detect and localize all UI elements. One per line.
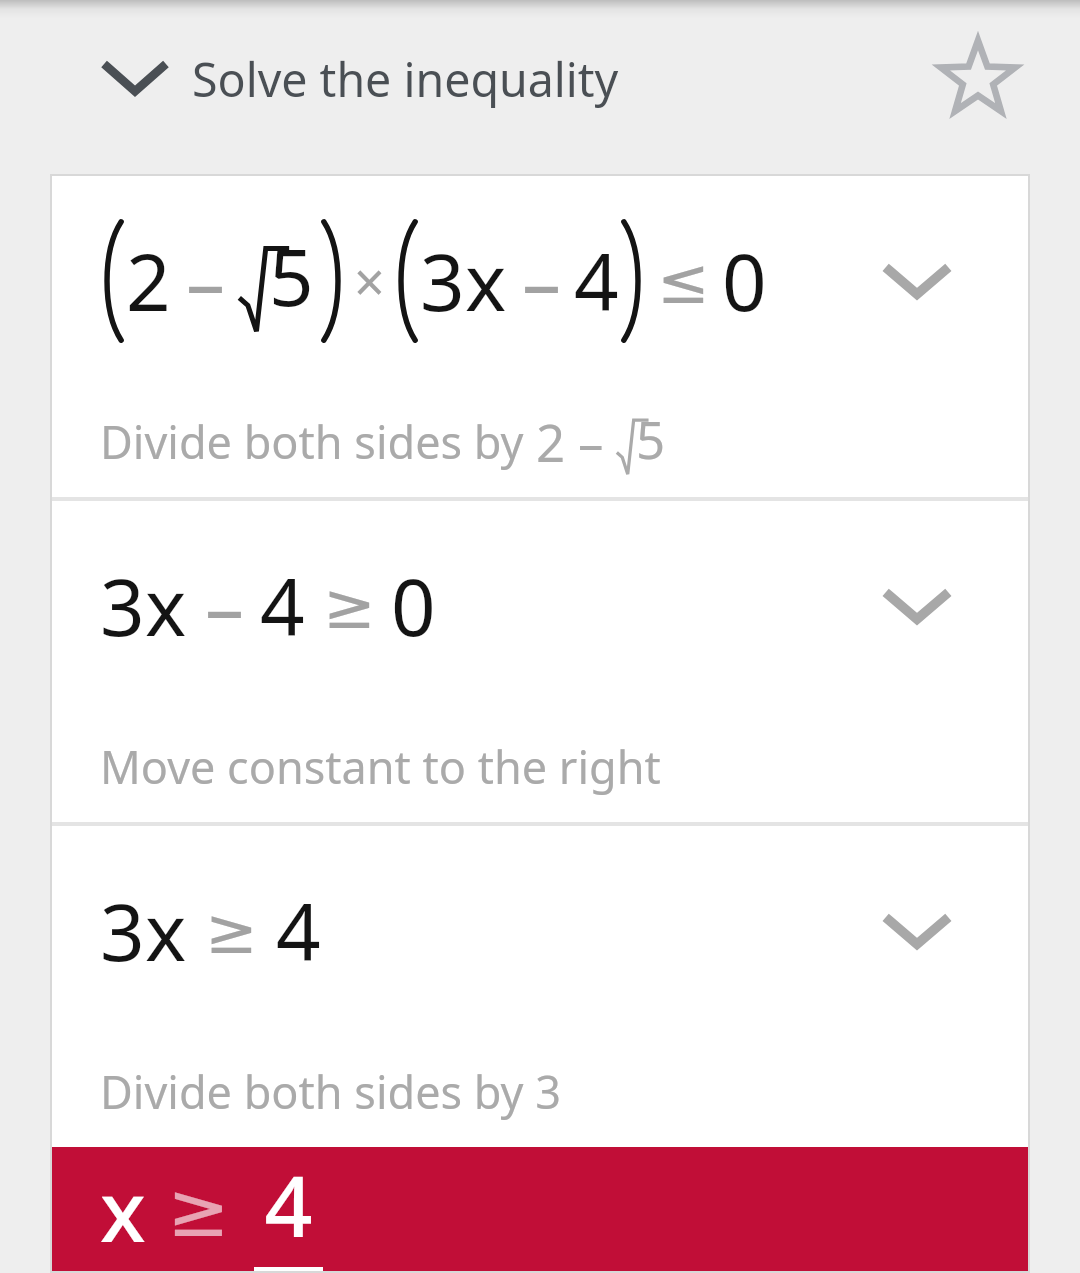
staticText: – bbox=[205, 553, 245, 659]
staticText: ≥ bbox=[323, 570, 376, 643]
staticText: × bbox=[354, 244, 385, 318]
button[interactable]: 2 bbox=[52, 176, 1028, 497]
staticText: ≤ bbox=[657, 245, 710, 318]
staticText: 0 bbox=[391, 553, 436, 659]
staticText: – bbox=[522, 228, 562, 334]
staticText: 0 bbox=[722, 228, 767, 334]
staticText: x bbox=[465, 228, 507, 334]
staticText: 3 bbox=[420, 228, 465, 334]
button[interactable]: 3 bbox=[52, 826, 1028, 1147]
staticText: ≥ bbox=[205, 895, 258, 968]
button[interactable]: Collapse bbox=[54, 18, 216, 138]
staticText: Divide both sides by 3 bbox=[100, 1061, 561, 1122]
staticText: x bbox=[145, 878, 187, 984]
staticText: 3 bbox=[100, 553, 145, 659]
staticText: ≥ bbox=[167, 1166, 230, 1253]
staticText: 5 bbox=[636, 404, 666, 473]
staticText: 2 bbox=[126, 228, 171, 334]
button[interactable]: Favorite bbox=[894, 18, 1062, 138]
button[interactable]: x bbox=[52, 1147, 1028, 1271]
staticText: x bbox=[145, 553, 187, 659]
staticText: x bbox=[100, 1152, 146, 1266]
button[interactable]: 3 bbox=[52, 501, 1028, 822]
staticText: 4 bbox=[574, 228, 619, 334]
staticText: 5 bbox=[269, 223, 314, 329]
staticText: – bbox=[186, 228, 226, 334]
staticText: 3 bbox=[100, 878, 145, 984]
staticText: 4 bbox=[276, 878, 321, 984]
staticText: Divide both sides by bbox=[100, 411, 536, 472]
staticText: 2 bbox=[536, 407, 566, 476]
staticText: Move constant to the right bbox=[100, 736, 661, 797]
staticText: 4 bbox=[260, 553, 305, 659]
staticText: – bbox=[578, 407, 604, 476]
staticText: 4 bbox=[264, 1147, 313, 1261]
staticText: Solve the inequality bbox=[192, 47, 619, 110]
